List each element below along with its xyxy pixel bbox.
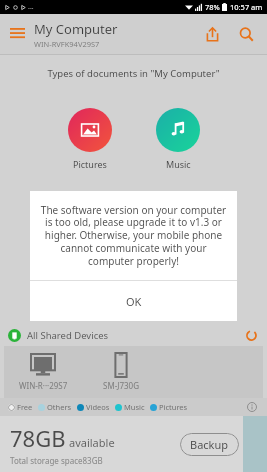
staticText: Videos bbox=[86, 402, 110, 412]
staticText: Total storage space83GB bbox=[10, 455, 103, 466]
staticText: Pictures bbox=[159, 402, 188, 412]
staticText: WIN-R···29S7 bbox=[19, 380, 68, 391]
staticText: My Computer bbox=[34, 20, 118, 38]
button[interactable]: Music bbox=[152, 104, 204, 174]
staticText: SM-J730G bbox=[103, 380, 139, 391]
staticText: Pictures bbox=[73, 158, 107, 170]
staticText: available bbox=[69, 435, 115, 450]
staticText: Music bbox=[166, 158, 191, 170]
button[interactable]: Info bbox=[245, 400, 259, 414]
button[interactable]: Search bbox=[229, 17, 263, 51]
button[interactable]: SM-J730G bbox=[82, 353, 160, 391]
button[interactable]: Menu bbox=[0, 17, 34, 51]
button[interactable]: OK bbox=[30, 281, 237, 321]
staticText: Free bbox=[17, 402, 33, 412]
staticText: The software version on your computer is… bbox=[40, 203, 227, 268]
button[interactable]: Pictures bbox=[64, 104, 116, 174]
staticText: ... bbox=[28, 2, 34, 12]
staticText: Music bbox=[124, 402, 145, 412]
staticText: 78% bbox=[205, 2, 220, 12]
button[interactable]: WIN-R···29S7 bbox=[4, 353, 82, 391]
button[interactable]: Refresh bbox=[243, 327, 259, 343]
staticText: WIN-RVFK94V29S7 bbox=[34, 39, 100, 49]
button[interactable]: Backup bbox=[180, 433, 239, 456]
staticText: Types of documents in "My Computer" bbox=[0, 67, 267, 80]
staticText: All Shared Devices bbox=[27, 329, 243, 342]
staticText: OK bbox=[126, 294, 142, 309]
staticText: Backup bbox=[190, 437, 229, 452]
staticText: Others bbox=[47, 402, 72, 412]
button[interactable]: Share bbox=[195, 17, 229, 51]
staticText: 78GB bbox=[10, 423, 66, 453]
staticText: 10:57 am bbox=[230, 2, 263, 12]
